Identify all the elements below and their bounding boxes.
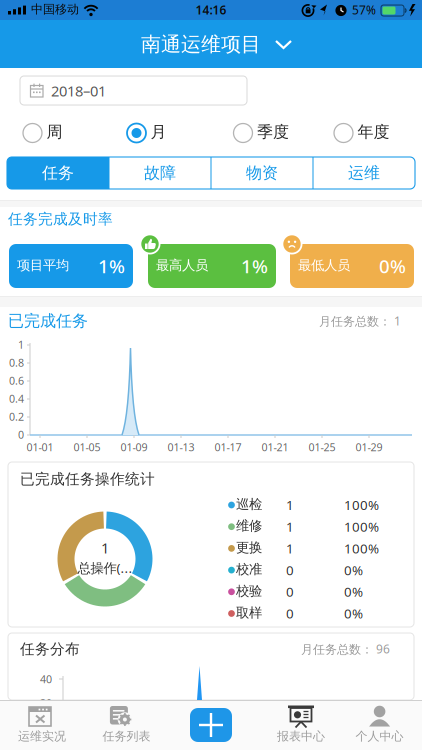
staticText: 100% [344, 518, 379, 535]
staticText: 运维实况 [18, 729, 66, 744]
staticText: 01-17 [214, 440, 241, 454]
staticText: 01-13 [167, 440, 194, 454]
staticText: 报表中心 [277, 729, 325, 744]
staticText: 1 [286, 539, 294, 557]
staticText: 01-01 [26, 440, 53, 454]
staticText: 年度 [357, 122, 389, 142]
staticText: 故障 [144, 163, 176, 183]
staticText: 任务完成及时率 [8, 210, 113, 228]
button[interactable]: 周 [19, 120, 67, 146]
staticText: 30 [40, 696, 52, 710]
staticText: 校准 [236, 561, 262, 577]
staticText: 0% [379, 253, 406, 278]
staticText: 月 [150, 122, 166, 142]
staticText: 最低人员 [298, 257, 350, 273]
staticText: 1 [286, 518, 294, 535]
staticText: 01-21 [261, 440, 288, 454]
button[interactable]: 故障 [7, 157, 109, 189]
staticText: 01-29 [355, 440, 382, 454]
staticText: 更换 [236, 539, 262, 556]
staticText: 任务 [42, 163, 74, 183]
staticText: 0% [344, 604, 363, 622]
staticText: 1% [241, 253, 268, 278]
button[interactable]: 个人中心 [338, 700, 422, 750]
staticText: 月任务总数： 1 [319, 313, 401, 329]
staticText: 南通运维项目 [141, 32, 261, 57]
staticText: 01-09 [120, 440, 147, 454]
staticText: 0.6 [9, 373, 24, 388]
button[interactable]: 月 [123, 120, 171, 146]
staticText: 周 [46, 122, 62, 142]
staticText: 任务分布 [20, 640, 80, 658]
staticText: 物资 [246, 163, 278, 183]
button[interactable]: 最高人员 [0, 0, 128, 44]
staticText: 01-25 [308, 440, 335, 454]
button[interactable]: 南通运维项目 [116, 20, 294, 68]
staticText: 校验 [236, 583, 262, 599]
staticText: 0.8 [9, 355, 24, 370]
staticText: 100% [344, 539, 379, 557]
button[interactable]: 报表中心 [259, 700, 343, 750]
staticText: 已完成任务 [8, 311, 88, 331]
button[interactable]: 任务列表 [84, 700, 168, 750]
staticText: 1% [98, 253, 125, 278]
button[interactable]: 任务 [7, 157, 109, 189]
staticText: 运维 [348, 163, 380, 183]
staticText: 0 [286, 604, 294, 622]
staticText: 1 [101, 538, 109, 557]
button[interactable]: 运维实况 [0, 700, 84, 750]
staticText: 季度 [257, 122, 289, 142]
staticText: 已完成任务操作统计 [20, 470, 155, 488]
button[interactable]: 物资 [7, 157, 109, 189]
staticText: 0% [344, 561, 363, 579]
button[interactable]: 2018–01 [20, 76, 247, 105]
staticText: 月任务总数： 96 [301, 641, 390, 657]
staticText: 2018–01 [51, 81, 106, 100]
staticText: 1 [18, 337, 24, 352]
staticText: 0.2 [9, 409, 24, 424]
staticText: 0% [344, 583, 363, 600]
staticText: 0 [286, 583, 294, 600]
staticText: 01-05 [73, 440, 100, 454]
staticText: 0 [286, 561, 294, 579]
staticText: 0 [18, 427, 24, 442]
staticText: 1 [286, 496, 294, 514]
button[interactable]: 年度 [330, 120, 396, 146]
staticText: 巡检 [236, 496, 262, 512]
button[interactable]: 季度 [230, 120, 296, 146]
staticText: 取样 [236, 604, 262, 621]
staticText: 项目平均 [17, 257, 69, 273]
button[interactable]: 最低人员 [0, 0, 124, 44]
button[interactable] [190, 708, 232, 742]
staticText: 40 [40, 672, 52, 686]
staticText: 最高人员 [156, 257, 208, 273]
staticText: 总操作(... [77, 559, 132, 577]
button[interactable]: 运维 [7, 157, 109, 189]
staticText: 14:16 [195, 2, 226, 18]
staticText: 个人中心 [356, 729, 404, 744]
staticText: 维修 [236, 518, 262, 534]
staticText: 任务列表 [102, 729, 150, 744]
staticText: 100% [344, 496, 379, 514]
button[interactable]: 项目平均 [0, 0, 124, 44]
staticText: 0.4 [9, 391, 24, 406]
staticText: 中国移动 [31, 2, 79, 17]
staticText: 57% [352, 2, 376, 18]
